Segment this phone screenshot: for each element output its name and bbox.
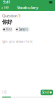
staticText: Question 1: (2, 13, 21, 18)
staticText: Type your answer here (2, 40, 33, 43)
staticText: Hint (6, 28, 12, 31)
button[interactable]: Example (15, 27, 30, 32)
button[interactable]: Hint (2, 27, 13, 32)
staticText: ‹ (1, 4, 3, 11)
staticText: 9:41 (3, 0, 10, 5)
button[interactable]: ‹ (0, 4, 9, 11)
staticText: 1/5 (2, 91, 7, 94)
staticText: Send (42, 91, 49, 94)
staticText: Vocabulary (17, 5, 38, 10)
staticText: Example (18, 28, 28, 31)
button[interactable]: Send (41, 90, 53, 95)
staticText: ▮▮▮ (49, 0, 52, 3)
staticText: 你好 (2, 19, 12, 25)
staticText: Back (4, 6, 9, 9)
